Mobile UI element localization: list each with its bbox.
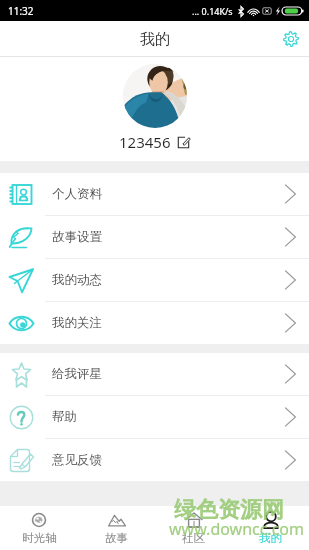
staticText: 时光轴 bbox=[22, 531, 57, 545]
staticText: www.downcc.com bbox=[169, 518, 305, 540]
staticText: 故事设置 bbox=[52, 229, 102, 245]
staticText: 我的 bbox=[259, 531, 282, 545]
button[interactable]: Settings bbox=[278, 26, 304, 52]
staticText: ... 0.14K/s bbox=[192, 5, 233, 17]
staticText: 我的关注 bbox=[52, 315, 102, 331]
staticText: 123456 bbox=[119, 132, 171, 152]
button[interactable]: Edit name bbox=[177, 136, 190, 149]
staticText: 给我评星 bbox=[52, 366, 102, 382]
staticText: 社区 bbox=[182, 531, 205, 545]
button[interactable]: 意见反馈 bbox=[0, 439, 309, 481]
staticText: 故事 bbox=[105, 531, 128, 545]
staticText: 我的 bbox=[140, 30, 170, 49]
staticText: 个人资料 bbox=[52, 186, 102, 202]
staticText: 11:32 bbox=[8, 4, 34, 18]
button[interactable]: 帮助 bbox=[0, 396, 309, 438]
button[interactable]: 我的 bbox=[232, 506, 309, 550]
staticText: 我的动态 bbox=[52, 272, 102, 288]
staticText: 意见反馈 bbox=[52, 452, 102, 468]
button[interactable]: 时光轴 bbox=[0, 506, 78, 550]
button[interactable]: 我的动态 bbox=[0, 259, 309, 301]
staticText: 帮助 bbox=[52, 409, 77, 425]
staticText: 绿色资源网 bbox=[174, 496, 284, 524]
button[interactable]: 社区 bbox=[155, 506, 232, 550]
button[interactable]: 故事设置 bbox=[0, 216, 309, 258]
button[interactable]: 我的关注 bbox=[0, 302, 309, 344]
button[interactable]: 给我评星 bbox=[0, 353, 309, 395]
button[interactable]: 个人资料 bbox=[0, 173, 309, 215]
button[interactable]: 故事 bbox=[78, 506, 155, 550]
button[interactable] bbox=[123, 64, 187, 128]
